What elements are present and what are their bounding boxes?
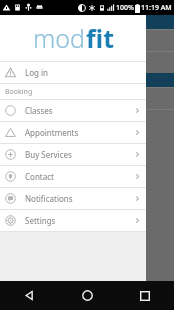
staticText: 100% (116, 3, 134, 13)
button[interactable]: Notifications (0, 188, 146, 209)
staticText: Contact (25, 171, 134, 182)
staticText: Appointments (25, 127, 134, 138)
staticText: Settings (25, 215, 134, 226)
button[interactable]: Open item (0, 29, 174, 51)
staticText: mod (33, 21, 86, 55)
button[interactable]: Collapse section (0, 73, 174, 87)
button[interactable]: Open item (0, 87, 174, 109)
button[interactable]: Open item (0, 109, 174, 131)
button[interactable]: Recent apps (116, 281, 174, 310)
staticText: fit (86, 21, 114, 55)
button[interactable]: Back (0, 281, 58, 310)
button[interactable]: Open item (0, 51, 174, 73)
staticText: Notifications (25, 193, 134, 204)
staticText: Classes (25, 105, 134, 116)
staticText: Log in (25, 67, 141, 78)
staticText: Booking (5, 87, 33, 97)
button[interactable]: Log in (0, 62, 146, 83)
staticText: Buy Services (25, 149, 134, 160)
button[interactable]: Appointments (0, 122, 146, 143)
button[interactable]: Home (58, 281, 116, 310)
button[interactable]: Contact (0, 166, 146, 187)
button[interactable]: Buy Services (0, 144, 146, 165)
button[interactable]: Settings (0, 210, 146, 231)
staticText: 11:19 AM (141, 3, 172, 13)
button[interactable]: Collapse section (0, 15, 174, 29)
button[interactable]: Classes (0, 100, 146, 121)
